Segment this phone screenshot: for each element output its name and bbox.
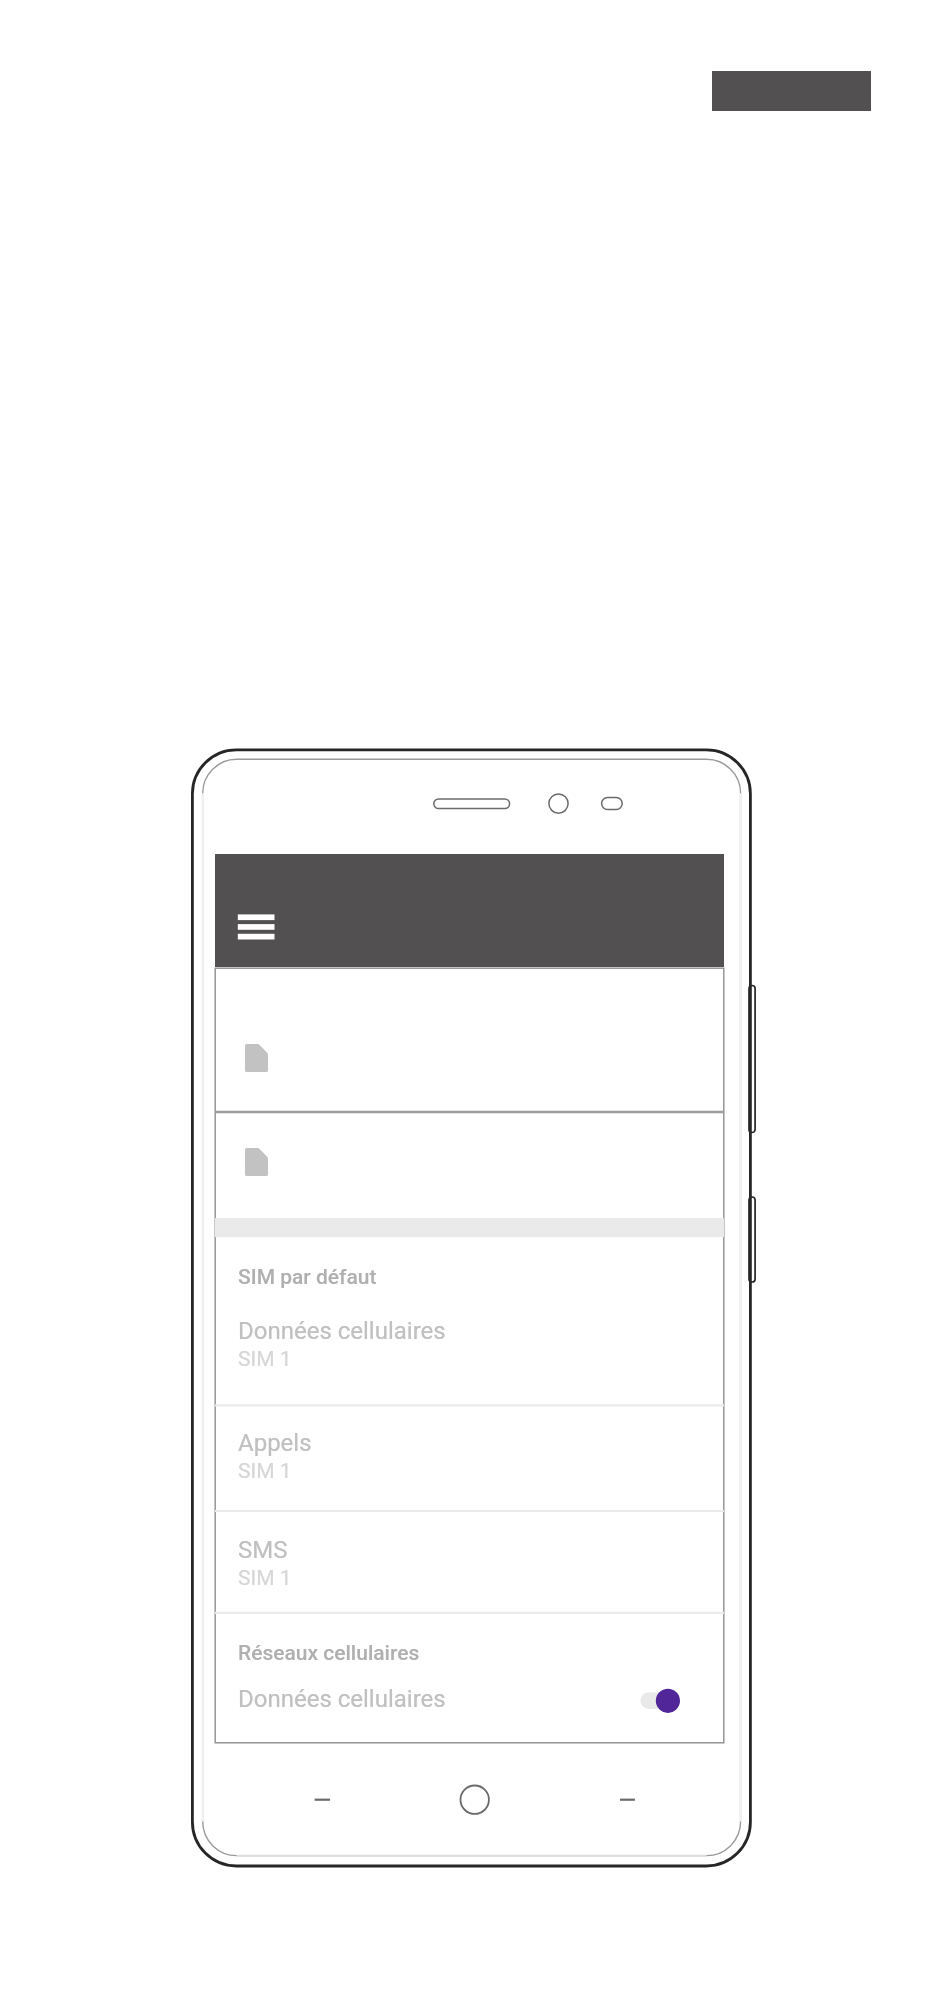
staticText: Réseaux cellulaires [238, 1641, 420, 1666]
staticText: Appels [238, 1429, 312, 1457]
staticText: SMS [238, 1536, 288, 1564]
button[interactable]: Open navigation menu [227, 903, 287, 965]
button[interactable]: Document row 2 [215, 1113, 724, 1218]
button[interactable]: Open navigation menu [215, 854, 724, 967]
staticText: SIM 1 [238, 1347, 292, 1372]
button[interactable]: Données cellulaires, SIM 1 [215, 1237, 724, 1405]
button[interactable]: Document row 1 [215, 968, 724, 1112]
button[interactable]: SMS, SIM 1 [215, 1512, 724, 1613]
staticText: SIM par défaut [238, 1265, 377, 1290]
button[interactable]: Données cellulaires toggle [628, 1680, 692, 1722]
staticText: SIM 1 [238, 1459, 292, 1484]
staticText: Données cellulaires [238, 1317, 446, 1345]
staticText: Données cellulaires [238, 1685, 446, 1713]
staticText: SIM 1 [238, 1566, 292, 1591]
button[interactable]: Appels, SIM 1 [215, 1406, 724, 1511]
